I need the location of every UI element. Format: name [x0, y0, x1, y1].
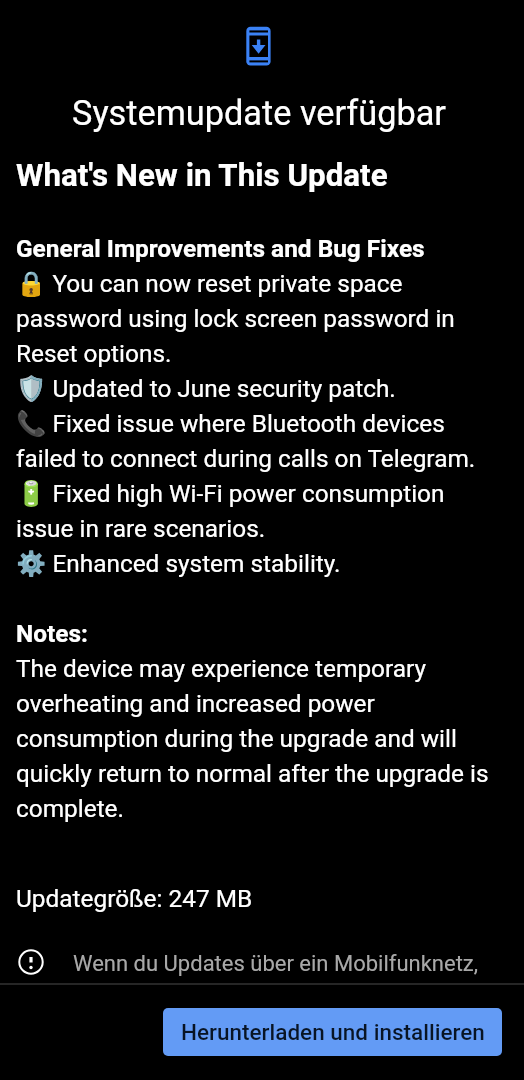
staticText: What's New in This Update — [16, 157, 388, 194]
staticText: Herunterladen und installieren — [181, 1019, 485, 1045]
staticText: Wenn du Updates über ein Mobilfunknetz, — [73, 951, 479, 977]
other: System update — [246, 26, 272, 66]
staticText: General Improvements and Bug Fixes 🔒 You… — [16, 234, 508, 823]
staticText: Systemupdate verfügbar — [0, 93, 521, 133]
button[interactable]: Herunterladen und installieren — [163, 1008, 502, 1056]
other: Warning — [16, 947, 46, 977]
staticText: Updategröße: 247 MB — [16, 884, 253, 913]
